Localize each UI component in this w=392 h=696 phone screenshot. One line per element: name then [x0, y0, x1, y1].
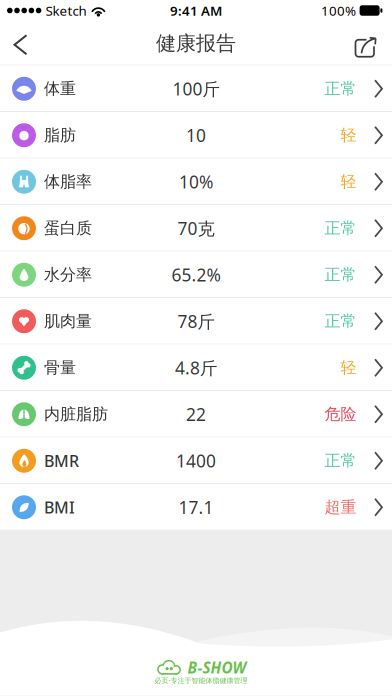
- staticText: 正常: [324, 311, 356, 331]
- staticText: 体重: [44, 79, 76, 99]
- staticText: 65.2%: [171, 263, 220, 286]
- staticText: 100%: [321, 2, 356, 19]
- button[interactable]: 脂肪: [0, 112, 392, 158]
- staticText: 轻: [340, 358, 356, 378]
- staticText: 必页·专注于智能体脂健康管理: [154, 675, 247, 685]
- staticText: 蛋白质: [44, 218, 92, 238]
- staticText: 轻: [340, 172, 356, 192]
- button[interactable]: 体脂率: [0, 158, 392, 205]
- button[interactable]: 水分率: [0, 251, 392, 298]
- staticText: 正常: [324, 218, 356, 238]
- button[interactable]: 肌肉量: [0, 298, 392, 344]
- staticText: 78斤: [177, 310, 214, 333]
- staticText: B-SHOW: [187, 657, 246, 678]
- button[interactable]: 内脏脂肪: [0, 391, 392, 437]
- button[interactable]: BMR: [0, 437, 392, 484]
- staticText: 10: [186, 124, 206, 147]
- staticText: 骨量: [44, 358, 76, 378]
- staticText: 超重: [324, 497, 356, 517]
- staticText: 健康报告: [156, 31, 236, 56]
- staticText: BMI: [44, 497, 75, 518]
- staticText: 17.1: [178, 496, 213, 519]
- button[interactable]: Back: [0, 31, 28, 55]
- staticText: 内脏脂肪: [44, 404, 108, 424]
- staticText: 肌肉量: [44, 311, 92, 331]
- staticText: 正常: [324, 451, 356, 471]
- staticText: 70克: [177, 217, 214, 240]
- staticText: Sketch: [45, 2, 86, 19]
- staticText: 10%: [179, 170, 213, 193]
- staticText: 22: [186, 403, 206, 426]
- button[interactable]: Share: [354, 28, 392, 59]
- staticText: 1400: [176, 449, 216, 472]
- staticText: 9:41 AM: [170, 2, 222, 19]
- button[interactable]: 蛋白质: [0, 205, 392, 251]
- staticText: 正常: [324, 79, 356, 99]
- staticText: 4.8斤: [175, 356, 217, 379]
- staticText: BMR: [44, 450, 79, 471]
- button[interactable]: 骨量: [0, 344, 392, 391]
- staticText: 100斤: [172, 77, 219, 100]
- staticText: 水分率: [44, 265, 92, 285]
- staticText: 体脂率: [44, 172, 92, 192]
- staticText: 正常: [324, 265, 356, 285]
- staticText: 脂肪: [44, 125, 76, 145]
- button[interactable]: 体重: [0, 65, 392, 112]
- staticText: 危险: [324, 404, 356, 424]
- button[interactable]: BMI: [0, 484, 392, 530]
- staticText: 轻: [340, 125, 356, 145]
